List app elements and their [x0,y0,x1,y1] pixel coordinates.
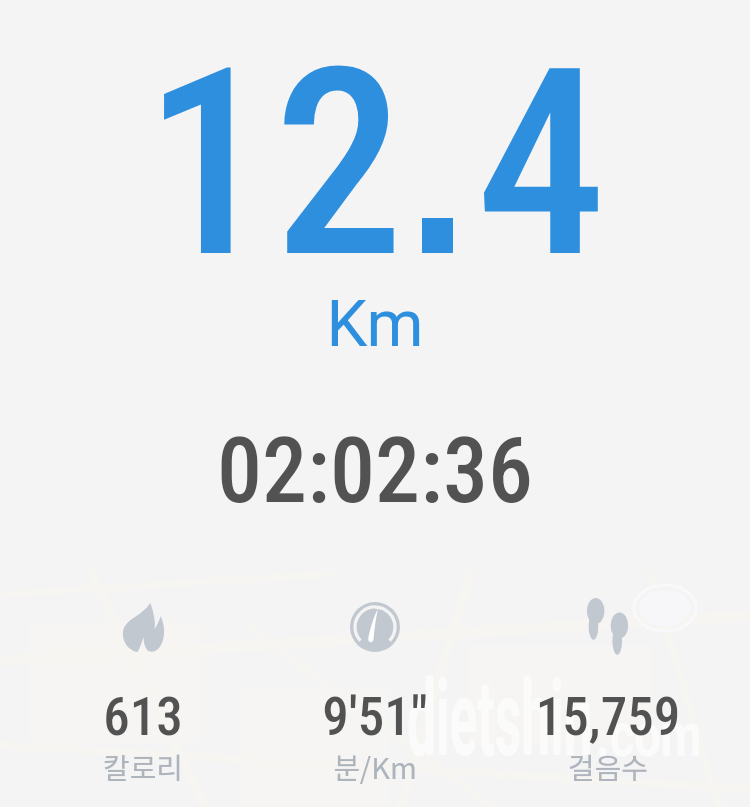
staticText: Km [0,286,750,362]
other: Steps [586,598,630,656]
staticText: 12.4 [0,12,750,317]
button[interactable]: Calories [28,585,258,785]
button[interactable]: Pace [260,585,490,785]
button[interactable]: Steps [493,585,723,785]
staticText: .com [596,698,702,771]
staticText: 02:02:36 [0,419,750,524]
staticText: 걸음수 [493,745,723,787]
staticText: 칼로리 [28,745,258,787]
staticText: 9'51" [260,686,490,748]
staticText: 분/Km [260,745,490,787]
staticText: 15,759 [493,686,723,748]
staticText: dietshin [407,658,593,781]
staticText: 613 [28,686,258,748]
other: Pace [350,602,400,652]
other: Calories [122,602,165,652]
